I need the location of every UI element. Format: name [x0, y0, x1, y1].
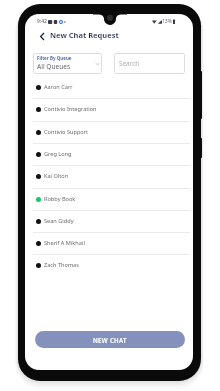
staticText: Contivio Support: [44, 128, 89, 136]
staticText: Sean Giddy: [44, 217, 74, 225]
button[interactable]: Filter By Queue: [33, 53, 102, 74]
button[interactable]: Back: [34, 28, 50, 44]
staticText: Zach Thomas: [44, 261, 79, 269]
button[interactable]: Robby Book: [25, 188, 193, 210]
staticText: All Queues: [37, 62, 71, 71]
staticText: Filter By Queue: [37, 55, 72, 61]
staticText: New Chat Request: [50, 30, 119, 40]
button[interactable]: Zach Thomas: [25, 254, 193, 276]
staticText: Aaron Carr: [44, 83, 73, 91]
staticText: Greg Long: [44, 150, 72, 158]
button[interactable]: Contivio Integration: [25, 98, 193, 120]
button[interactable]: NEW CHAT: [35, 331, 185, 348]
staticText: 13%: [162, 18, 172, 25]
button[interactable]: Greg Long: [25, 143, 193, 165]
staticText: Robby Book: [44, 195, 76, 203]
button[interactable]: Search: [114, 53, 185, 74]
staticText: Search: [119, 59, 140, 68]
staticText: NEW CHAT: [93, 336, 127, 344]
button[interactable]: Kai Olton: [25, 165, 193, 187]
staticText: Contivio Integration: [44, 105, 97, 113]
staticText: Sherif A Mikhail: [44, 239, 85, 247]
staticText: Kai Olton: [44, 172, 69, 180]
staticText: 9:42: [37, 18, 47, 25]
button[interactable]: Sherif A Mikhail: [25, 232, 193, 254]
button[interactable]: Aaron Carr: [25, 76, 193, 98]
button[interactable]: Contivio Support: [25, 121, 193, 143]
button[interactable]: Sean Giddy: [25, 210, 193, 232]
